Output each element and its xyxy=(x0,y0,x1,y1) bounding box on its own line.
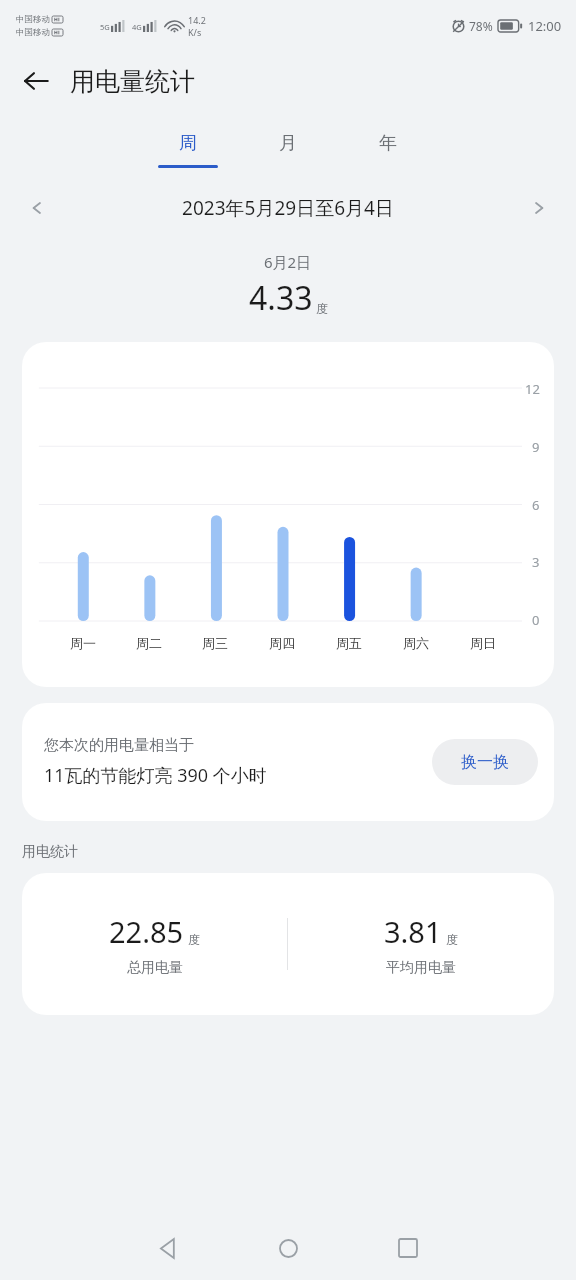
staticText: 周二 xyxy=(136,635,162,651)
button[interactable]: 月 xyxy=(238,132,338,168)
staticText: 12:00 xyxy=(528,17,562,35)
staticText: 6 xyxy=(532,496,540,514)
staticText: 2023年5月29日至6月4日 xyxy=(182,195,394,221)
staticText: 周五 xyxy=(336,635,362,651)
staticText: 中国移动 xyxy=(16,14,50,25)
button[interactable]: 主屏幕 xyxy=(257,1217,319,1279)
staticText: 总用电量 xyxy=(127,959,183,977)
staticText: 度 xyxy=(446,932,458,947)
staticText: 78% xyxy=(469,18,493,34)
staticText: 度 xyxy=(188,932,200,947)
staticText: 周三 xyxy=(202,635,228,651)
button[interactable]: 上一周 xyxy=(14,186,58,230)
button[interactable]: 最近任务 xyxy=(377,1217,439,1279)
staticText: 3.81 xyxy=(384,912,442,951)
staticText: 5G xyxy=(100,22,110,32)
staticText: 14.2 xyxy=(188,14,206,26)
staticText: 周 xyxy=(179,132,197,155)
button[interactable]: 12 xyxy=(22,342,554,687)
staticText: 周六 xyxy=(403,635,429,651)
button[interactable]: 年 xyxy=(338,132,438,168)
button[interactable]: 换一换 xyxy=(432,739,538,785)
button[interactable]: 返回 xyxy=(137,1217,199,1279)
staticText: 中国移动 xyxy=(16,27,50,38)
staticText: 4.33 xyxy=(249,276,313,320)
staticText: 周四 xyxy=(269,635,295,651)
staticText: 22.85 xyxy=(109,912,184,951)
staticText: 0 xyxy=(532,611,540,629)
staticText: 用电量统计 xyxy=(70,66,195,97)
staticText: 6月2日 xyxy=(264,252,312,272)
staticText: 12 xyxy=(525,380,540,398)
staticText: 平均用电量 xyxy=(386,959,456,977)
staticText: 换一换 xyxy=(461,752,509,772)
button[interactable]: 返回 xyxy=(12,57,60,105)
staticText: 周日 xyxy=(470,635,496,651)
staticText: K/s xyxy=(188,26,202,38)
button[interactable]: 下一周 xyxy=(518,186,562,230)
staticText: 您本次的用电量相当于 xyxy=(44,736,194,755)
staticText: 4G xyxy=(132,22,142,32)
button[interactable]: 周 xyxy=(138,132,238,168)
staticText: 用电统计 xyxy=(22,843,78,861)
staticText: 周一 xyxy=(70,635,96,651)
staticText: 3 xyxy=(532,553,540,571)
staticText: 月 xyxy=(279,132,297,155)
staticText: 11瓦的节能灯亮 390 个小时 xyxy=(44,763,267,788)
staticText: 度 xyxy=(316,301,328,316)
staticText: 年 xyxy=(379,132,397,155)
staticText: 9 xyxy=(532,438,540,456)
button[interactable]: 22.85 xyxy=(22,873,554,1015)
